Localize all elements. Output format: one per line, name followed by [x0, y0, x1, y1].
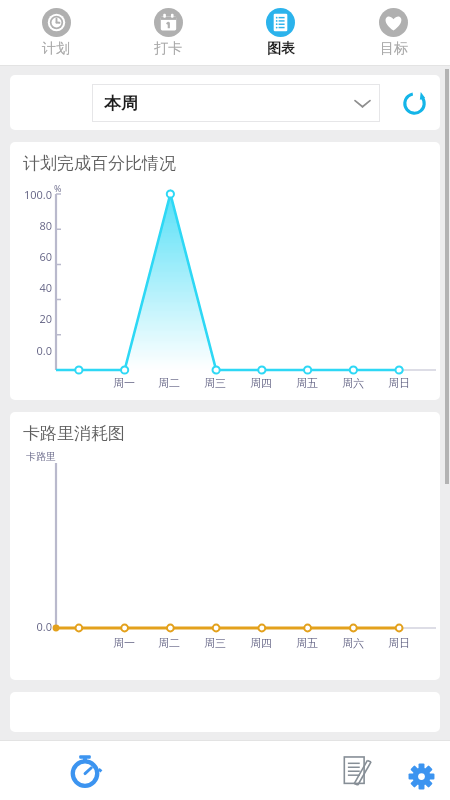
- staticText: 计划完成百分比情况: [23, 153, 176, 174]
- staticText: 60: [39, 249, 52, 264]
- button[interactable]: 图表: [224, 0, 337, 66]
- button[interactable]: 计划: [0, 0, 112, 66]
- staticText: 周日: [388, 376, 410, 390]
- staticText: 100.0: [23, 187, 52, 202]
- button[interactable]: 本周: [92, 84, 380, 122]
- staticText: 40: [39, 280, 52, 295]
- staticText: 80: [39, 218, 52, 233]
- staticText: 周六: [342, 636, 364, 650]
- staticText: 卡路里: [26, 450, 56, 463]
- staticText: 周日: [388, 636, 410, 650]
- staticText: 周五: [296, 636, 318, 650]
- staticText: %: [54, 182, 62, 194]
- staticText: 目标: [380, 40, 408, 58]
- staticText: 周一: [113, 376, 135, 390]
- staticText: 周三: [204, 376, 226, 390]
- button[interactable]: 打卡: [112, 0, 224, 66]
- staticText: 周四: [250, 376, 272, 390]
- button[interactable]: Timer: [62, 747, 108, 793]
- staticText: 周一: [113, 636, 135, 650]
- staticText: 周三: [204, 636, 226, 650]
- staticText: 周四: [250, 636, 272, 650]
- staticText: 周六: [342, 376, 364, 390]
- staticText: 本周: [104, 93, 138, 114]
- button[interactable]: Refresh: [396, 85, 432, 121]
- staticText: 周二: [158, 636, 180, 650]
- button[interactable]: Settings: [402, 757, 440, 795]
- staticText: 打卡: [154, 40, 182, 58]
- staticText: 周五: [296, 376, 318, 390]
- staticText: 计划: [42, 40, 70, 58]
- staticText: 周二: [158, 376, 180, 390]
- staticText: 0.0: [36, 343, 52, 358]
- staticText: 图表: [267, 40, 295, 58]
- staticText: 卡路里消耗图: [23, 423, 125, 444]
- staticText: 20: [39, 311, 52, 326]
- button[interactable]: Notes: [336, 748, 380, 792]
- button[interactable]: 目标: [337, 0, 450, 66]
- staticText: 0.0: [36, 619, 52, 634]
